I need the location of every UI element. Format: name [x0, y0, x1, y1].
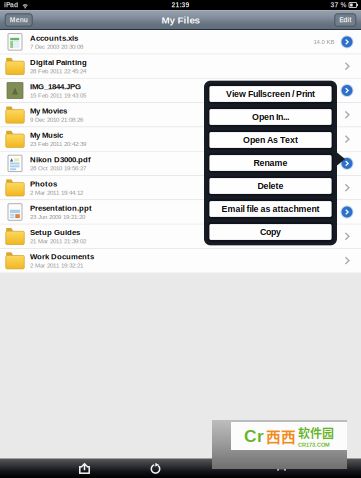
staticText: 21 Mar 2011 21:39:02	[30, 238, 86, 245]
button[interactable]: Photos	[0, 176, 361, 200]
staticText: 软件园	[298, 424, 334, 442]
button[interactable]: Nikon D3000.pdf	[0, 151, 361, 175]
staticText: 15 Feb 2011 19:43:05	[30, 92, 86, 99]
button[interactable]: Accounts.xls	[0, 30, 361, 54]
staticText: CR173.COM	[298, 442, 330, 448]
button[interactable]: Menu	[5, 14, 32, 26]
button[interactable]: Toggle full screen	[276, 463, 287, 474]
button[interactable]: View Fullscreen / Print	[208, 85, 332, 103]
staticText: 28 Oct 2010 19:56:27	[30, 165, 86, 172]
button[interactable]: Setup Guides	[0, 224, 361, 248]
button[interactable]: My Movies	[0, 103, 361, 127]
button[interactable]: Edit	[335, 14, 356, 26]
button[interactable]: Rename	[208, 154, 332, 172]
staticText: Menu	[10, 16, 28, 24]
button[interactable]: Work Documents	[0, 249, 361, 272]
staticText: iPad	[4, 1, 18, 9]
staticText: 37 %	[330, 1, 346, 9]
staticText: Open In...	[252, 112, 289, 122]
staticText: 23 Feb 2011 20:42:39	[30, 140, 86, 147]
staticText: 28 Feb 2011 22:45:24	[30, 68, 86, 74]
button[interactable]: Delete	[208, 177, 332, 195]
staticText: Presentation.ppt	[30, 204, 92, 212]
staticText: Open As Text	[243, 135, 298, 145]
staticText: My Files	[161, 14, 199, 25]
button[interactable]: My Music	[0, 127, 361, 151]
staticText: Copy	[260, 227, 281, 237]
staticText: My Movies	[30, 107, 67, 115]
button[interactable]: Refresh	[149, 463, 162, 474]
staticText: Digital Painting	[30, 58, 87, 67]
staticText: Email file as attachment	[221, 204, 319, 214]
staticText: 9 Dec 2010 21:08:26	[30, 116, 83, 123]
staticText: 2 Mar 2011 19:32:21	[30, 262, 83, 269]
staticText: Edit	[339, 16, 351, 24]
button[interactable]: Email file as attachment	[208, 200, 332, 218]
staticText: 2 Mar 2011 19:44:12	[30, 189, 83, 196]
button[interactable]: Copy	[208, 223, 332, 241]
staticText: View Fullscreen / Print	[226, 89, 315, 99]
staticText: Rename	[253, 158, 287, 168]
staticText: 14.0 KB	[313, 39, 334, 45]
button[interactable]: Open In...	[208, 108, 332, 126]
staticText: 7 Dec 2003 20:30:08	[30, 43, 83, 50]
button[interactable]: Share	[78, 463, 91, 474]
staticText: Delete	[257, 181, 283, 191]
staticText: 西西	[266, 425, 296, 447]
staticText: Cr	[244, 426, 264, 446]
staticText: Photos	[30, 179, 57, 188]
staticText: 21:39	[171, 1, 189, 9]
button[interactable]: Presentation.ppt	[0, 200, 361, 224]
staticText: Setup Guides	[30, 228, 80, 237]
staticText: Accounts.xls	[30, 34, 78, 42]
staticText: 23 Jun 2009 19:21:20	[30, 213, 85, 220]
staticText: Work Documents	[30, 252, 94, 261]
button[interactable]: Digital Painting	[0, 54, 361, 78]
button[interactable]: Open As Text	[208, 131, 332, 149]
staticText: IMG_1844.JPG	[30, 82, 81, 91]
button[interactable]: IMG_1844.JPG	[0, 79, 361, 102]
staticText: My Music	[30, 131, 63, 139]
staticText: Nikon D3000.pdf	[30, 155, 91, 164]
